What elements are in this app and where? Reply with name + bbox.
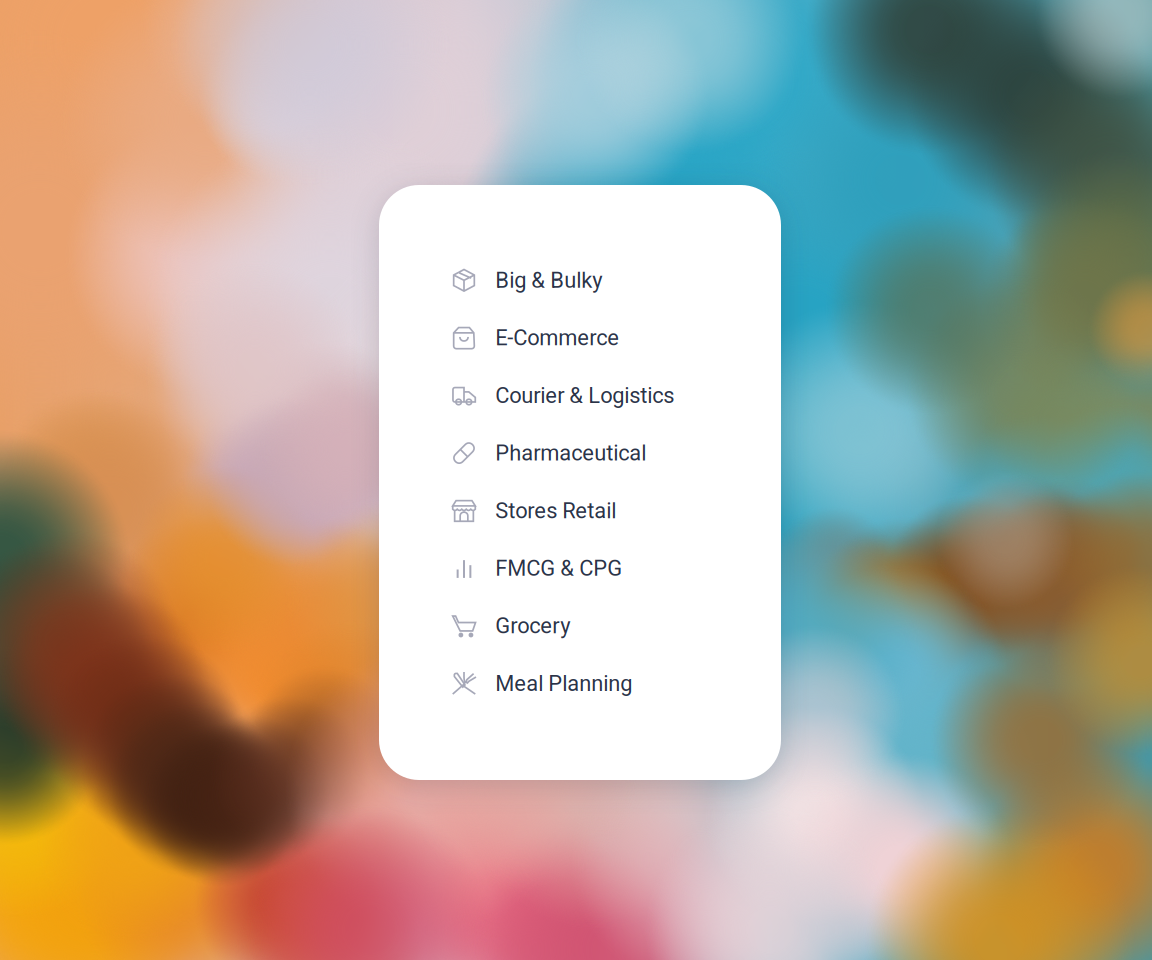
button[interactable]: E-Commerce	[452, 309, 765, 367]
button[interactable]: Pharmaceutical	[452, 424, 765, 482]
button[interactable]: Meal Planning	[452, 655, 765, 712]
button[interactable]: Stores Retail	[452, 482, 765, 539]
staticText: FMCG & CPG	[495, 555, 622, 581]
button[interactable]: Big & Bulky	[452, 251, 765, 309]
button[interactable]: Courier & Logistics	[452, 367, 765, 424]
staticText: Stores Retail	[495, 498, 616, 523]
staticText: Grocery	[495, 613, 570, 639]
button[interactable]: FMCG & CPG	[452, 539, 765, 597]
staticText: E-Commerce	[495, 325, 619, 351]
staticText: Big & Bulky	[495, 267, 602, 293]
staticText: Courier & Logistics	[495, 383, 674, 408]
staticText: Meal Planning	[495, 671, 632, 696]
button[interactable]: Grocery	[452, 597, 765, 655]
staticText: Pharmaceutical	[495, 440, 646, 466]
